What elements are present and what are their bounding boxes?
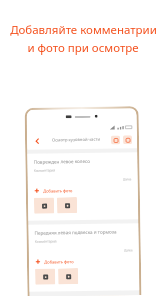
staticText: Добавить фото [44, 259, 74, 265]
button[interactable]: Назад [32, 136, 42, 146]
button[interactable]: Добавить фото [34, 186, 73, 195]
staticText: Комментарий [33, 168, 56, 173]
button[interactable]: Фото [34, 197, 54, 214]
button[interactable]: Передняя левая подвеска и тормоза [28, 223, 139, 292]
staticText: Далее [123, 177, 132, 181]
staticText: и фото при осмотре [27, 40, 139, 56]
button[interactable]: Фото [123, 135, 132, 144]
button[interactable]: Поврежден левое колесо [27, 152, 138, 221]
button[interactable]: Фото [57, 197, 77, 213]
staticText: Добавить фото [43, 188, 73, 194]
staticText: Поврежден левое колесо [33, 158, 90, 165]
button[interactable]: Фото [58, 268, 78, 284]
staticText: Передняя левая подвеска и тормоза [34, 228, 116, 236]
staticText: Комментарий [35, 239, 57, 244]
button[interactable]: Фото [35, 268, 55, 285]
staticText: Далее [124, 248, 133, 252]
staticText: Добавляйте комменатрии [10, 22, 157, 38]
button[interactable]: Добавить фото [35, 257, 74, 266]
staticText: Осмотр кузовной части [52, 137, 100, 143]
button[interactable]: Комментарий [111, 135, 120, 144]
